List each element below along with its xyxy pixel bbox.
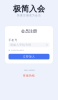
staticText: 立即加入 bbox=[23, 55, 35, 58]
staticText: 手机号 bbox=[8, 38, 17, 42]
button[interactable]: 立即加入 bbox=[8, 54, 49, 59]
staticText: 已有账号？点击立即登录 bbox=[23, 69, 34, 71]
staticText: 客服热线 bbox=[23, 74, 35, 77]
staticText: 会员注册 bbox=[21, 29, 37, 33]
button[interactable]: 已有账号？点击立即登录 bbox=[23, 69, 34, 71]
button[interactable]: 客服热线 bbox=[23, 74, 35, 77]
staticText: 请输入手机号码 bbox=[10, 43, 31, 47]
staticText: 快速注册成为会员 bbox=[17, 14, 41, 17]
staticText: 极简入会 bbox=[13, 4, 45, 14]
staticText: 我已阅读并同意会员服务协议 bbox=[11, 50, 24, 51]
